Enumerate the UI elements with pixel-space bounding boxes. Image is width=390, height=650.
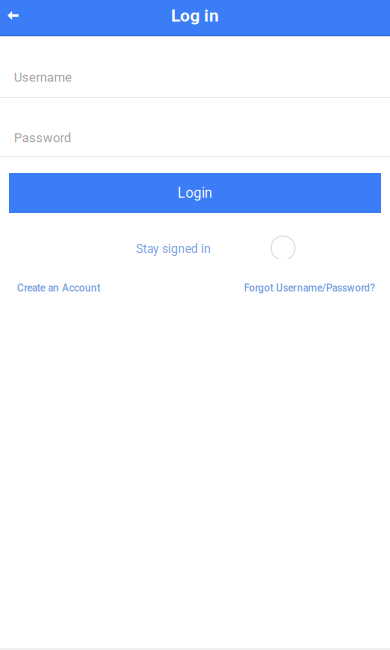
staticText: Stay signed in bbox=[136, 242, 211, 256]
staticText: Create an Account bbox=[17, 282, 100, 294]
staticText: Password bbox=[14, 131, 71, 145]
staticText: Forgot Username/Password? bbox=[244, 282, 375, 294]
button[interactable]: Stay signed in bbox=[136, 235, 211, 259]
button[interactable]: Login bbox=[9, 173, 381, 213]
button[interactable]: Stay signed in bbox=[271, 234, 295, 260]
button[interactable]: Back bbox=[0, 0, 26, 37]
button[interactable]: Create an Account bbox=[17, 282, 100, 294]
staticText: Log in bbox=[171, 5, 219, 26]
staticText: Username bbox=[14, 70, 72, 85]
staticText: Login bbox=[177, 185, 212, 201]
button[interactable]: Forgot Username/Password? bbox=[244, 282, 375, 294]
